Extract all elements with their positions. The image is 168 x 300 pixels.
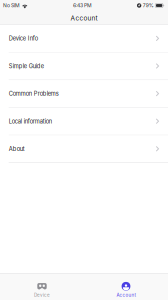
staticText: Simple Guide: [9, 63, 44, 69]
button[interactable]: Device Info: [0, 25, 168, 53]
button[interactable]: Common Problems: [0, 80, 168, 108]
button[interactable]: Local information: [0, 108, 168, 135]
staticText: Account: [116, 292, 135, 298]
button[interactable]: Account: [84, 273, 168, 300]
staticText: Device Info: [9, 35, 38, 42]
button[interactable]: Simple Guide: [0, 53, 168, 80]
staticText: Device: [34, 292, 50, 298]
staticText: Account: [70, 14, 97, 22]
staticText: 6:43 PM: [73, 2, 92, 8]
button[interactable]: Device: [0, 273, 84, 300]
staticText: 79%: [143, 2, 154, 8]
staticText: Local information: [9, 118, 52, 125]
staticText: Common Problems: [9, 90, 59, 97]
button[interactable]: About: [0, 135, 168, 163]
staticText: About: [9, 145, 25, 152]
staticText: No SIM: [3, 2, 20, 8]
